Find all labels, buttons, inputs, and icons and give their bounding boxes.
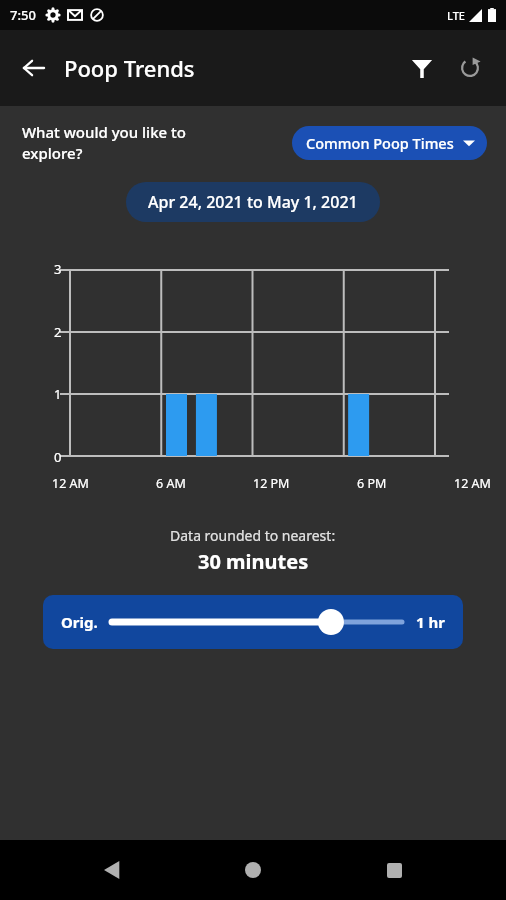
staticText: Data rounded to nearest: [170, 526, 336, 545]
staticText: 30 minutes [198, 548, 309, 575]
staticText: Common Poop Times [306, 133, 454, 153]
staticText: 12 PM [253, 475, 290, 492]
staticText: 12 AM [52, 475, 89, 492]
button[interactable]: Common Poop Times [292, 126, 487, 160]
staticText: 3 [54, 260, 62, 278]
staticText: 7:50 [10, 6, 36, 24]
staticText: Apr 24, 2021 to May 1, 2021 [148, 191, 358, 213]
button[interactable]: Orig. [43, 595, 463, 649]
staticText: 1 hr [416, 612, 445, 632]
button[interactable]: Filter [398, 44, 446, 92]
staticText: 1 [54, 385, 62, 403]
staticText: Orig. [61, 612, 98, 632]
staticText: 6 PM [357, 475, 387, 492]
staticText: 2 [54, 323, 62, 341]
staticText: Poop Trends [64, 53, 195, 83]
button[interactable]: Apr 24, 2021 to May 1, 2021 [126, 182, 380, 222]
staticText: 12 AM [454, 475, 491, 492]
button[interactable]: Refresh [446, 44, 494, 92]
button[interactable]: Back [10, 44, 58, 92]
staticText: 6 AM [156, 475, 186, 492]
staticText: 0 [54, 448, 62, 466]
button[interactable]: Recent apps [366, 842, 422, 898]
button[interactable]: Back [85, 842, 141, 898]
staticText: LTE [447, 8, 465, 23]
button[interactable]: Home [225, 842, 281, 898]
staticText: What would you like to explore? [22, 122, 292, 164]
